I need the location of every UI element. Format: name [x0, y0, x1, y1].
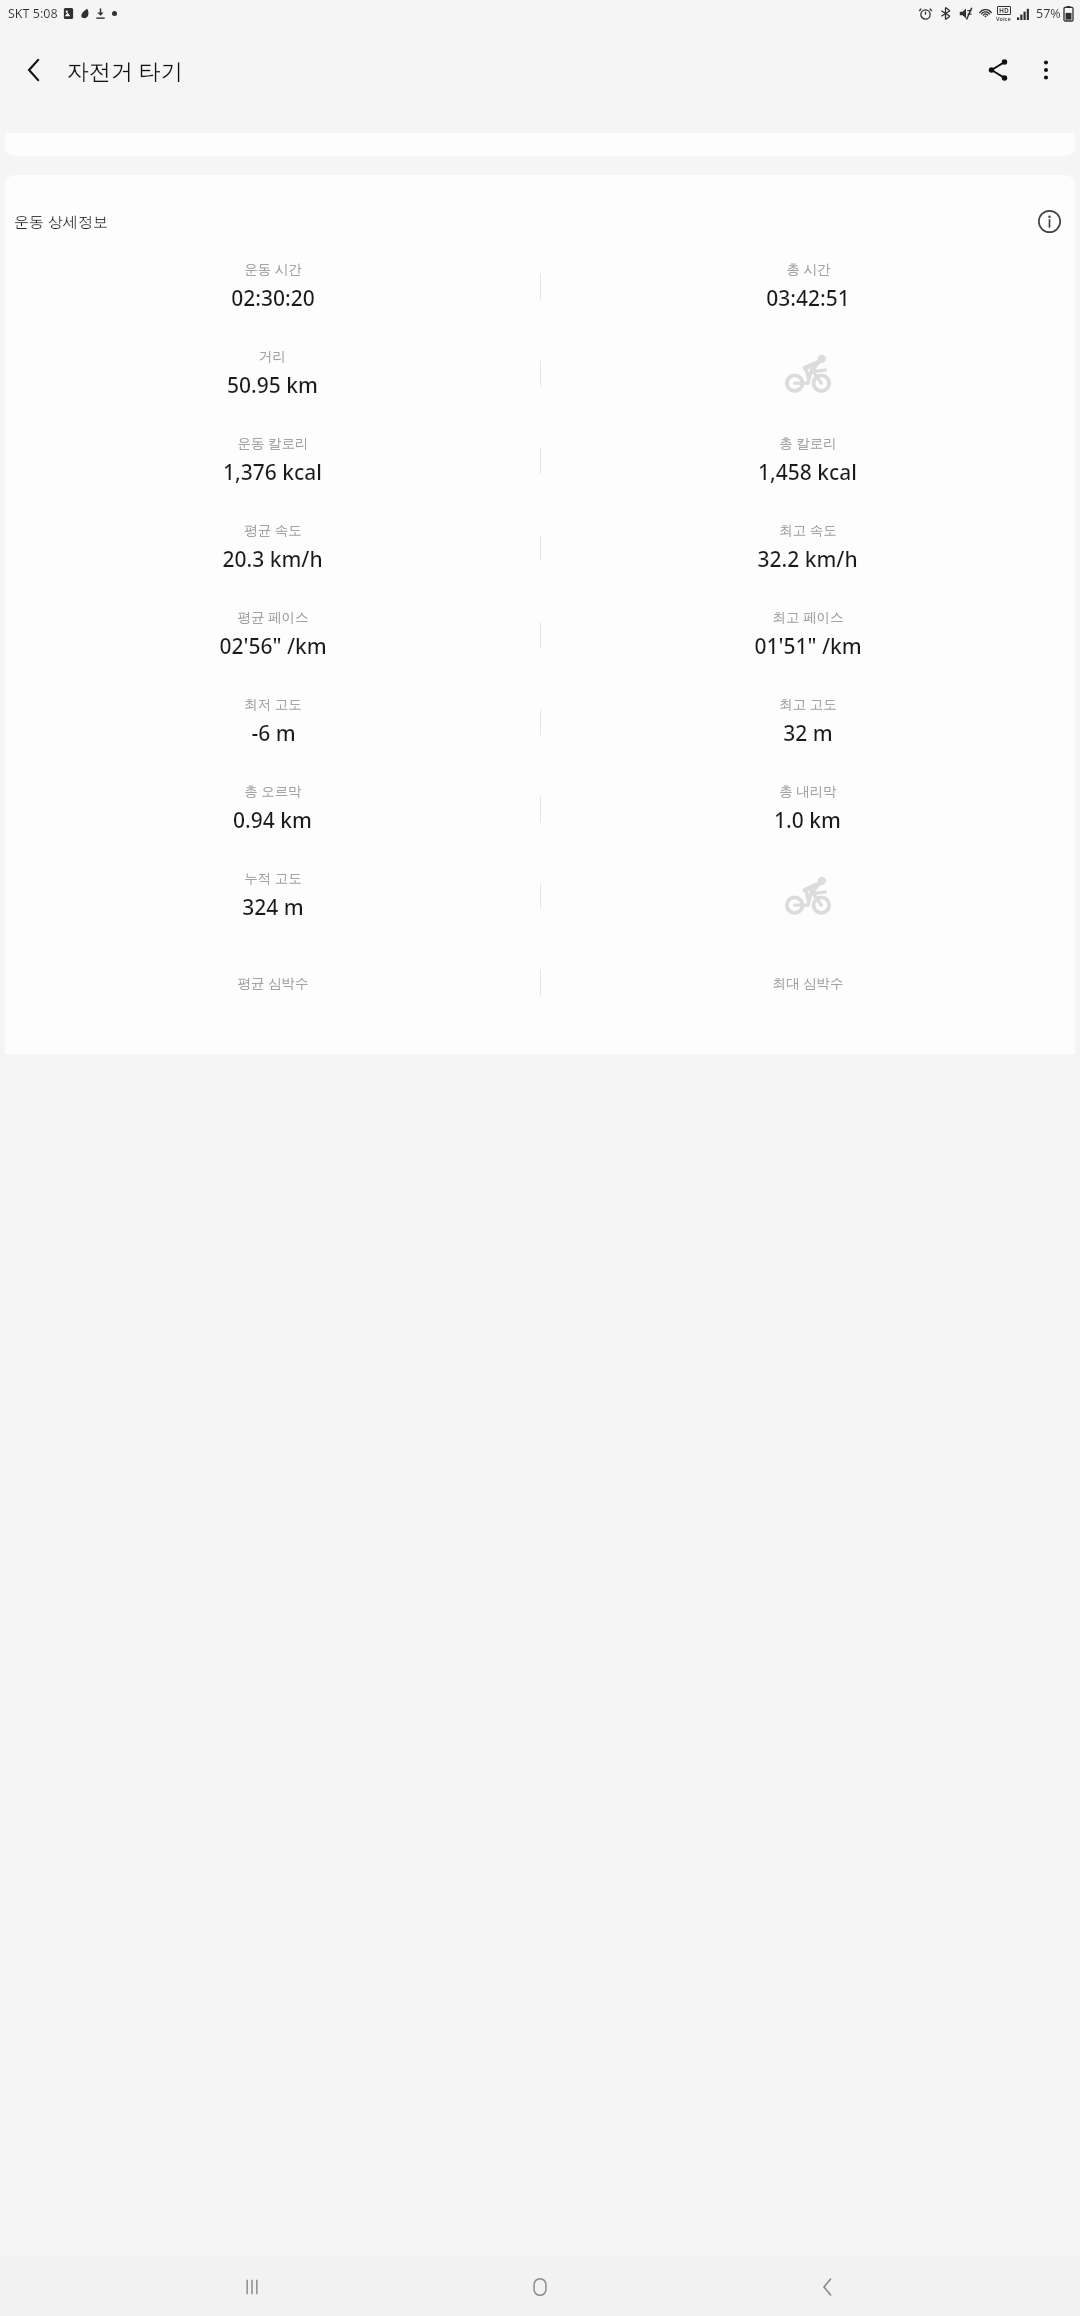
button[interactable]: 거리 — [5, 342, 540, 405]
staticText: 평균 페이스 — [237, 608, 309, 626]
button[interactable]: Information — [1029, 201, 1069, 241]
staticText: 1,458 kcal — [758, 458, 857, 487]
staticText: 총 오르막 — [244, 782, 302, 800]
button[interactable]: 운동 칼로리 — [5, 429, 540, 492]
staticText: 02'56" /km — [219, 632, 327, 661]
staticText: 최고 속도 — [779, 521, 837, 539]
staticText: 50.95 km — [227, 371, 318, 400]
other: Cycling — [785, 351, 831, 397]
staticText: 02:30:20 — [231, 284, 315, 313]
staticText: Voice — [996, 15, 1011, 22]
staticText: 32.2 km/h — [757, 545, 858, 574]
staticText: 57% — [1036, 5, 1061, 22]
button[interactable]: Cycling — [540, 342, 1075, 405]
button[interactable]: Share — [974, 46, 1022, 94]
button[interactable]: 평균 속도 — [5, 516, 540, 579]
staticText: 최대 심박수 — [772, 974, 844, 992]
staticText: 01'51" /km — [754, 632, 862, 661]
button[interactable]: Recent apps — [216, 2257, 288, 2316]
staticText: 0.94 km — [233, 806, 312, 835]
button[interactable]: 최고 속도 — [540, 516, 1075, 579]
other: Cycling — [785, 873, 831, 919]
staticText: 운동 칼로리 — [237, 434, 309, 452]
staticText: 20.3 km/h — [222, 545, 323, 574]
staticText: 거리 — [259, 348, 286, 365]
button[interactable]: 총 칼로리 — [540, 429, 1075, 492]
staticText: 32 m — [783, 719, 833, 748]
staticText: 324 m — [242, 893, 304, 922]
staticText: HD — [999, 6, 1009, 15]
staticText: 1.0 km — [774, 806, 841, 835]
button[interactable]: 총 시간 — [540, 255, 1075, 318]
button[interactable]: More options — [1022, 46, 1070, 94]
staticText: 평균 심박수 — [237, 974, 309, 992]
staticText: 총 시간 — [786, 260, 831, 278]
button[interactable]: Back — [10, 46, 58, 94]
staticText: 최고 고도 — [779, 695, 837, 713]
staticText: 운동 시간 — [244, 260, 302, 278]
button[interactable]: 최고 페이스 — [540, 603, 1075, 666]
button[interactable]: 평균 심박수 — [5, 951, 540, 1014]
button[interactable]: 누적 고도 — [5, 864, 540, 927]
button[interactable]: Cycling — [540, 864, 1075, 927]
button[interactable]: 총 오르막 — [5, 777, 540, 840]
button[interactable]: 총 내리막 — [540, 777, 1075, 840]
button[interactable]: 최대 심박수 — [540, 951, 1075, 1014]
button[interactable]: Back — [792, 2257, 864, 2316]
staticText: 최저 고도 — [244, 695, 302, 713]
staticText: 1,376 kcal — [223, 458, 322, 487]
staticText: SKT 5:08 — [8, 5, 58, 22]
button[interactable]: 평균 페이스 — [5, 603, 540, 666]
staticText: 평균 속도 — [244, 521, 302, 539]
button[interactable]: Home — [504, 2257, 576, 2316]
staticText: -6 m — [251, 719, 296, 748]
staticText: 최고 페이스 — [772, 608, 844, 626]
staticText: 누적 고도 — [244, 869, 302, 887]
button[interactable]: 최고 고도 — [540, 690, 1075, 753]
staticText: 총 칼로리 — [779, 434, 837, 452]
staticText: 운동 상세정보 — [14, 211, 108, 231]
button[interactable]: 최저 고도 — [5, 690, 540, 753]
staticText: 03:42:51 — [766, 284, 850, 313]
staticText: 자전거 타기 — [67, 55, 183, 85]
staticText: 총 내리막 — [779, 782, 837, 800]
button[interactable]: 운동 시간 — [5, 255, 540, 318]
